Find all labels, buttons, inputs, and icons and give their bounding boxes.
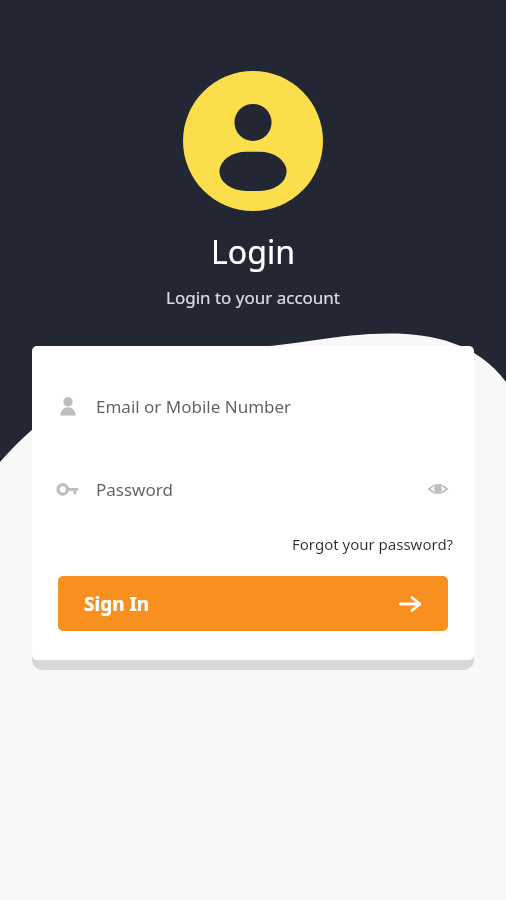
staticText: Login <box>211 230 295 274</box>
button[interactable]: Forgot your password? <box>284 528 462 560</box>
staticText: Login to your account <box>166 286 340 309</box>
staticText: Sign In <box>84 591 150 617</box>
button[interactable]: Email or Mobile Number <box>32 364 474 448</box>
staticText: Email or Mobile Number <box>96 395 292 418</box>
button[interactable]: Show password <box>418 469 458 509</box>
button[interactable]: Password <box>32 447 474 531</box>
staticText: Forgot your password? <box>292 534 454 554</box>
staticText: Password <box>96 478 173 501</box>
button[interactable]: Sign In <box>58 576 448 631</box>
